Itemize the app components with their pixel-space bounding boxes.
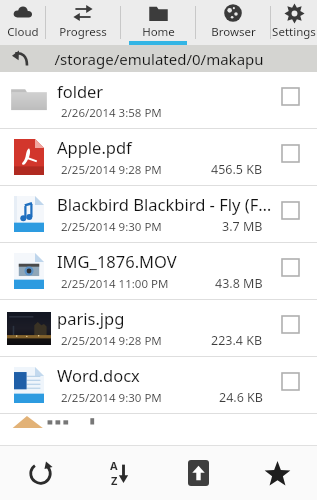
staticText: Progress [59, 24, 107, 40]
staticText: 43.8 MB [215, 275, 263, 292]
staticText: 2/25/2014 9:28 PM [61, 333, 162, 349]
staticText: Word.docx [57, 364, 140, 386]
button[interactable]: Settings [271, 0, 317, 45]
staticText: Z [111, 473, 118, 488]
staticText: Cloud [7, 24, 39, 40]
button[interactable]: Select Apple.pdf [273, 129, 307, 185]
staticText: paris.jpg [57, 307, 125, 329]
staticText: Home [142, 24, 175, 40]
button[interactable]: Select IMG_1876.MOV [273, 243, 307, 299]
staticText: Browser [211, 24, 256, 40]
button[interactable]: Browser [196, 0, 270, 45]
button[interactable]: Upload [159, 446, 238, 500]
button[interactable]: Select Word.docx [273, 357, 307, 413]
button[interactable]: Cloud [0, 0, 45, 45]
button[interactable]: Select folder [273, 72, 307, 128]
staticText: A [110, 458, 118, 473]
button[interactable]: Favorites [238, 446, 317, 500]
button[interactable]: Apple.pdf [0, 129, 317, 186]
button[interactable]: paris.jpg [0, 300, 317, 357]
staticText: /storage/emulated/0/makapu [54, 49, 264, 69]
button[interactable]: Blackbird Blackbird - Fly (Fea… [0, 186, 317, 243]
button[interactable]: Select Blackbird Blackbird - Fly (Fea… [273, 186, 307, 242]
staticText: 456.5 KB [211, 161, 263, 178]
button[interactable]: folder [0, 72, 317, 129]
staticText: 3.7 MB [222, 218, 263, 235]
staticText: 24.6 KB [219, 389, 263, 406]
button[interactable]: Sort [80, 446, 159, 500]
button[interactable]: Back [0, 45, 42, 72]
staticText: 223.4 KB [211, 332, 263, 349]
button[interactable] [0, 414, 317, 428]
staticText: Settings [272, 24, 316, 40]
button[interactable]: Home [121, 0, 195, 45]
staticText: folder [57, 80, 104, 102]
button[interactable]: Progress [46, 0, 120, 45]
staticText: 2/25/2014 9:30 PM [61, 390, 162, 406]
staticText: Apple.pdf [57, 136, 132, 158]
staticText: 2/25/2014 9:28 PM [61, 162, 162, 178]
button[interactable]: IMG_1876.MOV [0, 243, 317, 300]
staticText: IMG_1876.MOV [57, 250, 177, 272]
button[interactable]: Word.docx [0, 357, 317, 414]
staticText: 2/25/2014 11:00 PM [61, 276, 169, 292]
button[interactable]: Select paris.jpg [273, 300, 307, 356]
staticText: Blackbird Blackbird - Fly (Fea… [57, 193, 273, 215]
staticText: 2/26/2014 3:58 PM [61, 105, 162, 121]
button[interactable]: Refresh [0, 446, 80, 500]
staticText: 2/25/2014 9:30 PM [61, 219, 162, 235]
